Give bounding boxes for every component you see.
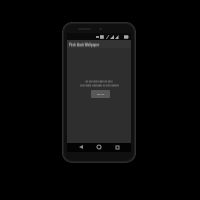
staticText: Pitch black Wallpaper on your device? xyxy=(80,84,119,87)
staticText: Do you really want to set a xyxy=(85,81,113,84)
button[interactable]: Home xyxy=(95,143,103,151)
staticText: SET UP xyxy=(97,93,105,96)
staticText: Pitch black Wallpaper xyxy=(69,44,100,48)
staticText: Pitch black Wallpaper on your device? xyxy=(80,85,119,88)
staticText: Pitch black Wallpaper on your device? xyxy=(80,83,119,86)
staticText: Do you really want to set a xyxy=(85,80,113,83)
button[interactable]: Recents xyxy=(113,143,121,151)
button[interactable]: SET UP xyxy=(91,90,110,98)
staticText: Do you really want to set a xyxy=(85,79,113,82)
staticText: Pitch black Wallpaper xyxy=(69,42,100,46)
button[interactable]: Back xyxy=(77,143,85,151)
staticText: Pitch black Wallpaper xyxy=(69,43,100,47)
